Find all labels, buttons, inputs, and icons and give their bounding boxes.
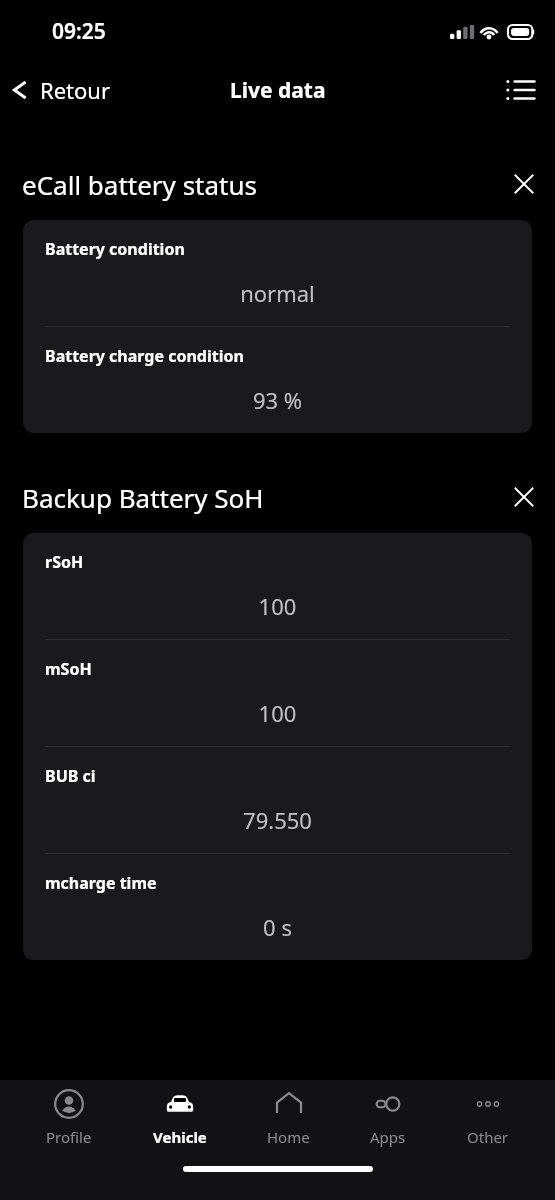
button[interactable]: mcharge time [23,854,532,960]
button[interactable]: Apps [356,1083,420,1153]
button[interactable]: Close Backup Battery SoH [493,478,555,516]
staticText: 100 [45,591,510,621]
button[interactable]: Other [453,1083,523,1153]
staticText: 93 % [45,385,510,415]
staticText: Vehicle [153,1127,207,1147]
staticText: 09:25 [52,17,106,46]
staticText: Home [267,1127,310,1147]
button[interactable]: Close eCall battery status [493,165,555,203]
button[interactable]: Home [253,1083,324,1153]
staticText: Apps [370,1127,406,1147]
button[interactable]: Profile [32,1083,106,1153]
staticText: 79.550 [45,805,510,835]
staticText: Live data [230,76,326,105]
staticText: 100 [45,698,510,728]
staticText: BUB ci [45,765,96,787]
staticText: Other [467,1127,509,1147]
button[interactable]: Retour [0,69,123,111]
staticText: 0 s [45,912,510,942]
staticText: Backup Battery SoH [22,480,264,515]
button[interactable]: mSoH [23,640,532,746]
button[interactable]: Battery charge condition [23,327,532,433]
staticText: eCall battery status [22,167,257,202]
staticText: rSoH [45,551,84,573]
button[interactable]: rSoH [23,533,532,639]
staticText: Battery charge condition [45,345,244,367]
staticText: Battery condition [45,238,185,260]
button[interactable]: BUB ci [23,747,532,853]
button[interactable]: Vehicle [139,1083,221,1153]
button[interactable]: Menu [487,65,555,115]
button[interactable]: Battery condition [23,220,532,326]
staticText: normal [45,278,510,308]
staticText: mcharge time [45,872,157,894]
staticText: Profile [46,1127,92,1147]
staticText: Retour [40,75,111,105]
staticText: mSoH [45,658,92,680]
